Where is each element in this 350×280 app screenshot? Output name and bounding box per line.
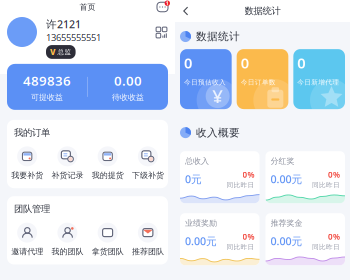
staticText: 489836 bbox=[23, 72, 71, 89]
button[interactable]: Scan code bbox=[156, 17, 168, 38]
staticText: 可提收益 bbox=[31, 92, 63, 102]
staticText: 0.00 bbox=[114, 72, 142, 89]
button[interactable]: 推荐团队 bbox=[128, 223, 168, 256]
staticText: 推荐奖金 bbox=[270, 218, 302, 228]
staticText: 0 bbox=[184, 53, 192, 73]
staticText: 0 bbox=[297, 53, 305, 73]
staticText: 0.00元 bbox=[270, 172, 302, 186]
staticText: V bbox=[50, 47, 56, 57]
staticText: 我要补货 bbox=[11, 170, 43, 180]
button[interactable]: 我要补货 bbox=[7, 146, 47, 180]
staticText: 0元 bbox=[185, 172, 202, 186]
button[interactable]: 补货记录 bbox=[47, 146, 87, 180]
staticText: 数据统计 bbox=[196, 30, 240, 43]
staticText: 0% bbox=[242, 231, 254, 242]
button[interactable]: 业绩奖励 bbox=[180, 213, 259, 265]
button[interactable]: 分红奖 bbox=[265, 151, 345, 203]
button[interactable]: ¥ bbox=[180, 49, 232, 109]
staticText: 业绩奖励 bbox=[185, 218, 217, 228]
staticText: 总收入 bbox=[185, 156, 209, 166]
staticText: 邀请代理 bbox=[11, 247, 43, 256]
button[interactable]: 0 bbox=[293, 49, 345, 109]
button[interactable]: 0 bbox=[237, 49, 288, 109]
staticText: 首页 bbox=[79, 2, 95, 12]
button[interactable]: 总收入 bbox=[180, 151, 259, 203]
staticText: 0% bbox=[328, 231, 340, 242]
staticText: 13655555551 bbox=[46, 31, 101, 44]
staticText: 0.00元 bbox=[185, 234, 217, 248]
staticText: 今日新增代理 bbox=[297, 78, 339, 86]
button[interactable]: 下级补货 bbox=[128, 146, 168, 180]
staticText: 待收收益 bbox=[112, 92, 144, 102]
staticText: 团队管理 bbox=[14, 203, 50, 215]
staticText: 0% bbox=[242, 169, 254, 180]
staticText: 下级补货 bbox=[132, 170, 164, 180]
staticText: ¥ bbox=[212, 84, 223, 108]
button[interactable]: Back bbox=[175, 2, 194, 20]
button[interactable]: 我的团队 bbox=[47, 223, 87, 256]
staticText: 补货记录 bbox=[51, 170, 83, 180]
staticText: 同比昨日 bbox=[226, 243, 254, 251]
staticText: 我的订单 bbox=[14, 127, 50, 138]
staticText: 许2121 bbox=[46, 17, 81, 31]
staticText: 同比昨日 bbox=[312, 181, 340, 189]
staticText: 我的提货 bbox=[92, 170, 124, 180]
staticText: 同比昨日 bbox=[226, 181, 254, 189]
staticText: 分红奖 bbox=[270, 156, 294, 166]
staticText: 今日订单数 bbox=[241, 78, 276, 86]
staticText: 0% bbox=[328, 169, 340, 180]
staticText: 收入概要 bbox=[196, 126, 240, 139]
staticText: 0.00元 bbox=[270, 234, 302, 248]
button[interactable]: Messages bbox=[151, 0, 175, 15]
button[interactable]: 我的提货 bbox=[87, 146, 128, 180]
button[interactable]: 邀请代理 bbox=[7, 223, 47, 256]
staticText: 我的团队 bbox=[51, 247, 83, 256]
button[interactable]: 拿货团队 bbox=[87, 223, 128, 256]
staticText: 推荐团队 bbox=[132, 247, 164, 256]
staticText: 总监 bbox=[58, 48, 72, 56]
staticText: 0 bbox=[241, 53, 249, 73]
staticText: 1 bbox=[166, 0, 169, 7]
staticText: 拿货团队 bbox=[92, 247, 124, 256]
staticText: 数据统计 bbox=[244, 5, 280, 17]
staticText: 今日预估收入 bbox=[184, 78, 226, 86]
button[interactable]: 推荐奖金 bbox=[265, 213, 345, 265]
staticText: 同比昨日 bbox=[312, 243, 340, 251]
